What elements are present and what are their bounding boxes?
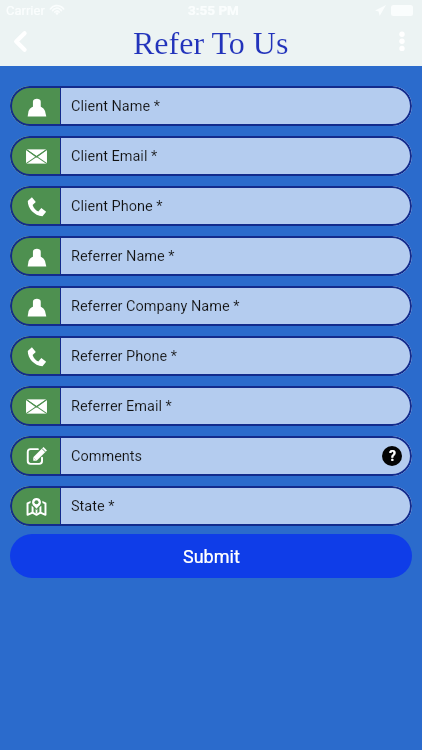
button[interactable]: State * (10, 486, 412, 526)
staticText: ? (389, 448, 396, 464)
staticText: Referrer Name * (71, 248, 175, 265)
button[interactable]: Client Phone * (10, 186, 412, 226)
button[interactable]: Referrer Phone * (10, 336, 412, 376)
button[interactable]: Comments (10, 436, 412, 476)
staticText: Refer To Us (133, 25, 289, 60)
button[interactable]: Submit (10, 534, 412, 578)
staticText: State * (71, 498, 115, 515)
staticText: Submit (183, 546, 240, 567)
button[interactable]: Help (382, 446, 402, 466)
staticText: 3:55 PM (188, 2, 239, 18)
button[interactable]: Back (0, 20, 40, 66)
staticText: Comments (71, 448, 143, 465)
staticText: Client Name * (71, 98, 161, 115)
staticText: Carrier (6, 3, 45, 18)
button[interactable]: Referrer Company Name * (10, 286, 412, 326)
button[interactable]: Client Email * (10, 136, 412, 176)
button[interactable]: Referrer Name * (10, 236, 412, 276)
staticText: Client Phone * (71, 198, 163, 215)
staticText: Referrer Email * (71, 398, 172, 415)
button[interactable]: Client Name * (10, 86, 412, 126)
staticText: Referrer Phone * (71, 348, 178, 365)
button[interactable]: Referrer Email * (10, 386, 412, 426)
staticText: Client Email * (71, 148, 158, 165)
staticText: Referrer Company Name * (71, 298, 240, 315)
button[interactable]: More options (388, 20, 422, 66)
